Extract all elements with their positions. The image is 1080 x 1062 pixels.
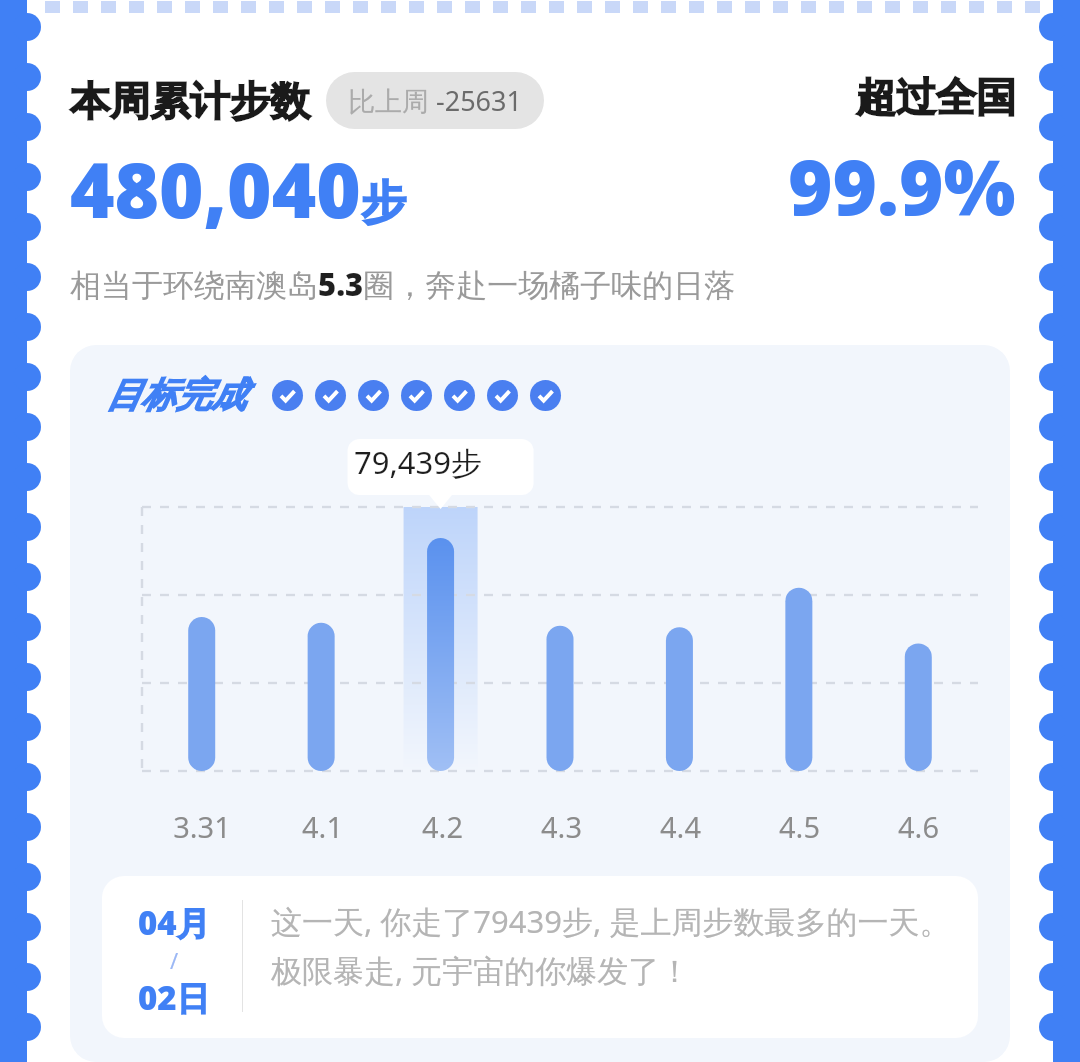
- staticText: 4.4: [660, 807, 701, 846]
- staticText: 4.5: [779, 807, 820, 846]
- staticText: 4.3: [541, 807, 582, 846]
- staticText: 比上周 -25631: [348, 82, 522, 119]
- staticText: 这一天, 你走了79439步, 是上周步数最多的一天。极限暴走, 元宇宙的你爆发…: [271, 900, 954, 991]
- other: Goal completed day 5: [444, 380, 475, 411]
- button[interactable]: 比上周 -25631: [326, 72, 544, 129]
- button[interactable]: 04月: [102, 876, 978, 1038]
- staticText: 本周累计步数: [70, 76, 310, 126]
- other: Goal completed day 7: [530, 380, 561, 411]
- staticText: 超过全国: [856, 72, 1016, 122]
- staticText: 02日: [138, 975, 210, 1020]
- staticText: 480,040步: [70, 137, 406, 241]
- staticText: 4.1: [302, 807, 343, 846]
- staticText: 4.2: [422, 807, 463, 846]
- staticText: 04月: [138, 900, 210, 945]
- other: Goal completed day 6: [487, 380, 518, 411]
- other: Goal completed day 1: [272, 380, 303, 411]
- staticText: /: [170, 945, 179, 975]
- staticText: 相当于环绕南澳岛5.3圈，奔赴一场橘子味的日落: [70, 263, 736, 305]
- other: Goal completed day 3: [358, 380, 389, 411]
- other: Goal completed day 2: [315, 380, 346, 411]
- staticText: 4.6: [898, 807, 939, 846]
- staticText: 目标完成: [106, 373, 246, 417]
- staticText: 3.31: [173, 807, 231, 846]
- staticText: 79,439步: [354, 441, 482, 483]
- other: Goal completed day 4: [401, 380, 432, 411]
- staticText: 99.9%: [788, 134, 1016, 238]
